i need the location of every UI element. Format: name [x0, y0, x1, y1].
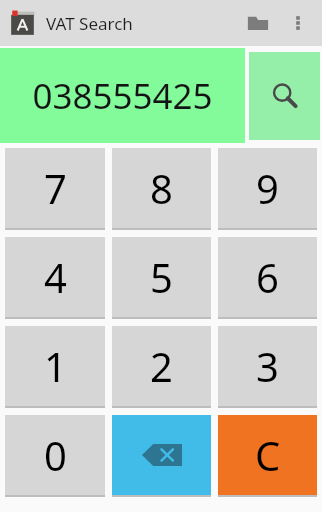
staticText: 3: [256, 339, 279, 393]
button[interactable]: 5: [112, 237, 211, 319]
staticText: 4: [44, 250, 67, 304]
button[interactable]: Open folder: [236, 1, 280, 45]
button[interactable]: Backspace: [112, 415, 211, 497]
button[interactable]: 0: [5, 415, 105, 497]
staticText: 038555425: [32, 72, 213, 120]
staticText: VAT Search: [46, 12, 133, 35]
staticText: 8: [150, 161, 173, 215]
button[interactable]: 7: [5, 148, 105, 230]
staticText: C: [255, 428, 281, 482]
staticText: 9: [256, 161, 279, 215]
staticText: 6: [256, 250, 279, 304]
button[interactable]: 4: [5, 237, 105, 319]
staticText: 5: [150, 250, 173, 304]
staticText: 2: [150, 339, 173, 393]
button[interactable]: C: [218, 415, 317, 497]
staticText: 7: [44, 161, 67, 215]
button[interactable]: 1: [5, 326, 105, 408]
button[interactable]: 8: [112, 148, 211, 230]
button[interactable]: 2: [112, 326, 211, 408]
button[interactable]: 3: [218, 326, 317, 408]
button[interactable]: Search: [249, 52, 320, 140]
button[interactable]: More options: [280, 5, 316, 41]
button[interactable]: 9: [218, 148, 317, 230]
staticText: 0: [44, 428, 67, 482]
button[interactable]: 038555425: [0, 48, 245, 143]
button[interactable]: 6: [218, 237, 317, 319]
staticText: 1: [44, 339, 67, 393]
